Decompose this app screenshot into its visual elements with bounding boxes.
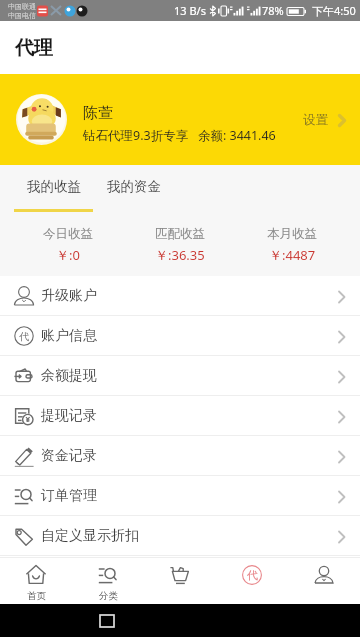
button[interactable]: 分类 bbox=[72, 558, 144, 604]
button[interactable]: 余额提现 bbox=[0, 356, 360, 395]
staticText: ￥:36.35 bbox=[155, 246, 205, 264]
staticText: 中国电信 bbox=[8, 11, 36, 20]
staticText: 自定义显示折扣 bbox=[41, 527, 139, 545]
staticText: 设置 bbox=[303, 112, 328, 128]
button[interactable]: 代 bbox=[0, 316, 360, 355]
button[interactable]: 设置 bbox=[303, 104, 346, 136]
staticText: 本月收益 bbox=[267, 226, 317, 242]
staticText: 资金记录 bbox=[41, 447, 97, 465]
button[interactable]: 我的收益 bbox=[14, 165, 93, 209]
staticText: 代理 bbox=[15, 36, 53, 60]
staticText: 余额提现 bbox=[41, 367, 97, 385]
staticText: 钻石代理9.3折专享 余额: 3441.46 bbox=[83, 127, 276, 144]
staticText: 升级账户 bbox=[41, 287, 97, 305]
staticText: 首页 bbox=[27, 590, 46, 602]
staticText: 分类 bbox=[99, 590, 118, 602]
button[interactable]: 资金记录 bbox=[0, 436, 360, 475]
staticText: 13 B/s bbox=[174, 3, 206, 18]
button[interactable]: Cart bbox=[144, 558, 216, 604]
staticText: 订单管理 bbox=[41, 487, 97, 505]
staticText: 78% bbox=[262, 3, 284, 18]
staticText: 账户信息 bbox=[41, 327, 97, 345]
button[interactable]: 自定义显示折扣 bbox=[0, 516, 360, 555]
button[interactable]: Agent bbox=[216, 558, 288, 604]
button[interactable]: 我的资金 bbox=[94, 165, 173, 209]
staticText: 陈萱 bbox=[83, 104, 113, 123]
staticText: 提现记录 bbox=[41, 407, 97, 425]
staticText: 下午4:50 bbox=[312, 3, 356, 18]
staticText: 匹配收益 bbox=[155, 226, 205, 242]
button[interactable]: 提现记录 bbox=[0, 396, 360, 435]
staticText: 今日收益 bbox=[43, 226, 93, 242]
staticText: 中国联通 bbox=[8, 2, 36, 11]
staticText: ￥:0 bbox=[56, 246, 80, 264]
staticText: ￥:4487 bbox=[269, 246, 316, 264]
button[interactable]: 首页 bbox=[0, 558, 72, 604]
button[interactable]: 订单管理 bbox=[0, 476, 360, 515]
staticText: 我的资金 bbox=[107, 178, 161, 195]
staticText: 代 bbox=[19, 330, 29, 343]
staticText: 我的收益 bbox=[27, 178, 81, 195]
button[interactable]: Profile bbox=[288, 558, 360, 604]
button[interactable]: 升级账户 bbox=[0, 276, 360, 315]
staticText: 代 bbox=[247, 568, 258, 582]
